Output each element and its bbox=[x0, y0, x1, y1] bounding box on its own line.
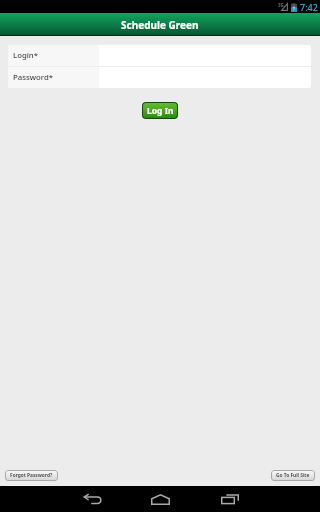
staticText: 3G bbox=[278, 2, 284, 8]
staticText: Forgot Password? bbox=[10, 472, 53, 479]
button[interactable]: Forgot Password? bbox=[10, 470, 53, 481]
staticText: Schedule Green bbox=[121, 18, 199, 32]
staticText: 7:42 bbox=[300, 1, 318, 13]
staticText: Login* bbox=[13, 50, 39, 61]
button[interactable]: Log In bbox=[143, 103, 177, 118]
button[interactable]: Go To Full Site bbox=[276, 470, 310, 481]
button[interactable]: Recent apps bbox=[195, 486, 265, 512]
staticText: Password* bbox=[13, 72, 54, 83]
button[interactable]: Back bbox=[55, 486, 125, 512]
button[interactable]: Home bbox=[125, 486, 195, 512]
staticText: Log In bbox=[147, 105, 174, 117]
staticText: Go To Full Site bbox=[276, 472, 310, 479]
